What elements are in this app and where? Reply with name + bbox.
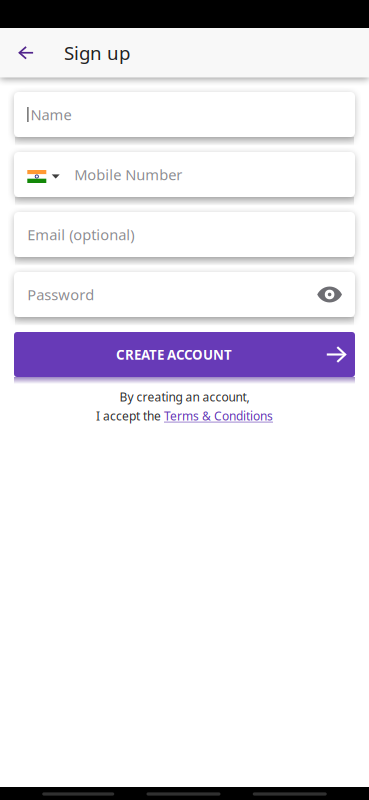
button[interactable]: Home — [146, 792, 220, 796]
staticText: Password — [27, 285, 94, 304]
button[interactable]: Select country code — [27, 168, 60, 181]
staticText: By creating an account, — [119, 389, 249, 405]
button[interactable]: Email (optional) — [14, 212, 355, 257]
staticText: Terms & Conditions — [164, 408, 273, 424]
button[interactable]: Mobile Number — [14, 152, 355, 197]
staticText: Email (optional) — [27, 225, 134, 244]
button[interactable]: Back — [253, 792, 327, 796]
staticText: Name — [30, 105, 71, 124]
button[interactable]: Terms & Conditions — [164, 408, 273, 424]
button[interactable]: Password — [14, 272, 355, 317]
staticText: I accept the — [96, 408, 164, 424]
staticText: Sign up — [64, 40, 130, 65]
button[interactable]: Show password — [317, 286, 343, 303]
staticText: CREATE ACCOUNT — [116, 346, 232, 363]
button[interactable]: Recent apps — [42, 792, 114, 796]
button[interactable]: CREATE ACCOUNT — [14, 332, 355, 377]
button[interactable]: Back — [0, 27, 52, 79]
button[interactable]: Name — [14, 92, 355, 137]
staticText: Mobile Number — [74, 165, 182, 184]
